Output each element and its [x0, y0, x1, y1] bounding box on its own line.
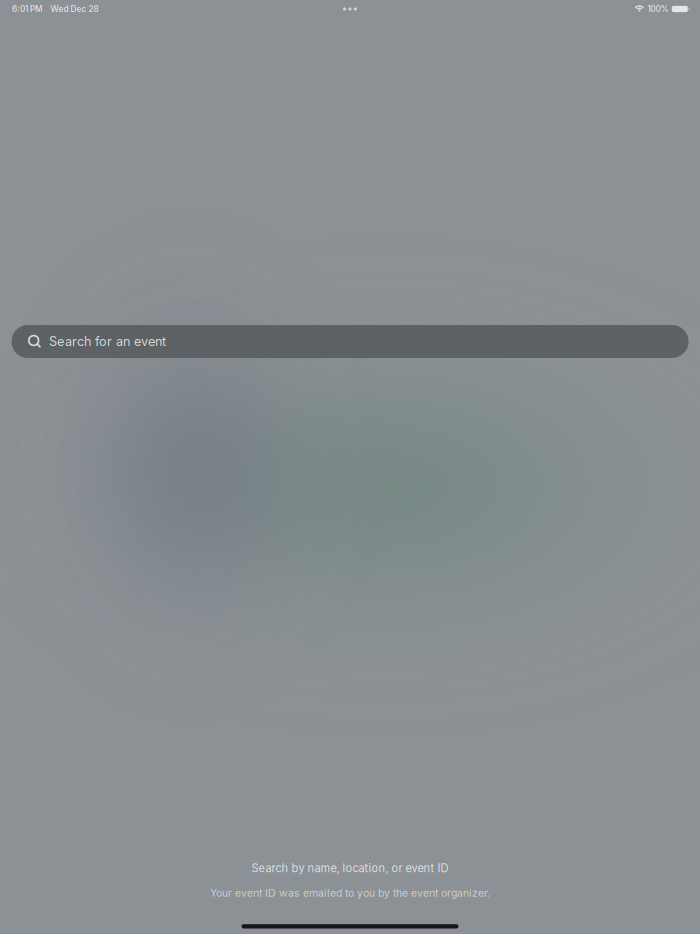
staticText: 6:01 PM: [12, 4, 43, 14]
staticText: Wed Dec 28: [50, 4, 98, 14]
staticText: 100%: [647, 4, 668, 14]
staticText: Search by name, location, or event ID: [251, 862, 448, 875]
staticText: Your event ID was emailed to you by the …: [210, 886, 490, 899]
button[interactable]: Search for an event: [11, 325, 688, 358]
staticText: Search for an event: [49, 334, 166, 349]
